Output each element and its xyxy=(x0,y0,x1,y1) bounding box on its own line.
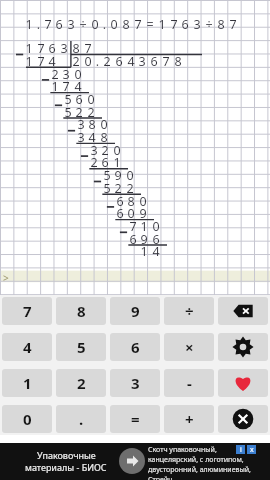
button[interactable]: 9 xyxy=(110,297,160,325)
staticText: 6 xyxy=(113,53,125,70)
button[interactable]: + xyxy=(164,405,214,433)
button[interactable]: Упаковочные xyxy=(0,443,270,480)
staticText: 4 xyxy=(23,337,32,357)
staticText: двусторонний, алюминиевый, xyxy=(148,465,251,475)
staticText: 0 xyxy=(23,409,32,429)
staticText: 7 xyxy=(132,16,144,33)
staticText: 0 xyxy=(111,142,123,159)
staticText: 1 xyxy=(23,16,35,33)
staticText: 3 xyxy=(60,66,72,83)
button[interactable]: 5 xyxy=(56,333,106,361)
button[interactable]: Clear xyxy=(218,405,268,433)
staticText: 4 xyxy=(72,78,84,95)
staticText: . xyxy=(101,16,108,33)
staticText: 9 xyxy=(138,231,150,248)
staticText: 3 xyxy=(191,16,203,33)
staticText: 6 xyxy=(53,16,65,33)
button[interactable]: Ad info xyxy=(236,445,245,454)
button[interactable]: 2 xyxy=(56,369,106,397)
button[interactable]: = xyxy=(110,405,160,433)
staticText: 0 xyxy=(125,205,137,222)
staticText: 6 xyxy=(114,193,126,210)
button[interactable]: 7 xyxy=(2,297,52,325)
staticText: 0 xyxy=(124,167,136,184)
staticText: 0 xyxy=(137,193,149,210)
staticText: 5 xyxy=(101,180,113,197)
button[interactable]: 3 xyxy=(110,369,160,397)
staticText: 4 xyxy=(46,53,58,70)
staticText: 0 xyxy=(85,91,97,108)
staticText: 8 xyxy=(70,40,82,57)
staticText: 5 xyxy=(77,337,86,357)
staticText: 8 xyxy=(125,193,137,210)
staticText: 7 xyxy=(82,40,94,57)
staticText: = xyxy=(131,409,140,429)
button[interactable]: Settings xyxy=(218,333,268,361)
staticText: 7 xyxy=(127,218,139,235)
staticText: 2 xyxy=(124,180,136,197)
button[interactable]: - xyxy=(164,369,214,397)
staticText: - xyxy=(187,373,192,393)
button[interactable]: ÷ xyxy=(164,297,214,325)
button[interactable]: Close ad xyxy=(247,445,256,454)
staticText: 1 xyxy=(156,16,168,33)
staticText: 6 xyxy=(99,154,111,171)
staticText: . xyxy=(94,53,101,70)
staticText: 3 xyxy=(75,116,87,133)
staticText: 1 xyxy=(111,154,123,171)
staticText: . xyxy=(79,409,84,429)
staticText: 9 xyxy=(131,301,140,321)
button[interactable]: Favorite xyxy=(218,369,268,397)
staticText: > xyxy=(3,271,9,283)
staticText: 2 xyxy=(99,142,111,159)
staticText: 0 xyxy=(150,218,162,235)
staticText: x xyxy=(250,445,254,454)
staticText: . xyxy=(35,16,42,33)
staticText: 8 xyxy=(86,116,98,133)
staticText: 5 xyxy=(62,104,74,121)
staticText: 6 xyxy=(73,91,85,108)
button[interactable]: 1 xyxy=(2,369,52,397)
button[interactable]: 6 xyxy=(110,333,160,361)
staticText: материалы - БИОС xyxy=(25,461,107,473)
button[interactable]: 4 xyxy=(2,333,52,361)
button[interactable]: 0 xyxy=(2,405,52,433)
button[interactable]: × xyxy=(164,333,214,361)
staticText: 6 xyxy=(127,231,139,248)
button[interactable]: > xyxy=(0,271,270,283)
staticText: 7 xyxy=(227,16,239,33)
staticText: 7 xyxy=(168,16,180,33)
staticText: 4 xyxy=(86,129,98,146)
button[interactable]: 8 xyxy=(56,297,106,325)
staticText: 1 xyxy=(138,218,150,235)
staticText: 7 xyxy=(35,53,47,70)
staticText: ÷ xyxy=(77,16,89,33)
staticText: 0 xyxy=(72,66,84,83)
staticText: 2 xyxy=(88,154,100,171)
staticText: Скотч упаковочный, xyxy=(148,445,217,455)
staticText: 7 xyxy=(60,78,72,95)
staticText: 2 xyxy=(101,53,113,70)
button[interactable]: . xyxy=(56,405,106,433)
staticText: = xyxy=(144,16,156,33)
staticText: 6 xyxy=(148,53,160,70)
other: Settings xyxy=(232,336,254,358)
staticText: 0 xyxy=(108,16,120,33)
staticText: 6 xyxy=(150,231,162,248)
staticText: 3 xyxy=(75,129,87,146)
staticText: 6 xyxy=(114,205,126,222)
staticText: × xyxy=(185,337,194,357)
other: Backspace xyxy=(232,300,254,322)
staticText: 3 xyxy=(65,16,77,33)
staticText: 1 xyxy=(23,373,32,393)
button[interactable]: Backspace xyxy=(218,297,268,325)
staticText: 2 xyxy=(70,53,82,70)
staticText: ÷ xyxy=(185,301,194,321)
staticText: ÷ xyxy=(203,16,215,33)
staticText: 5 xyxy=(62,91,74,108)
staticText: 8 xyxy=(215,16,227,33)
staticText: 1 xyxy=(49,78,61,95)
staticText: 8 xyxy=(77,301,86,321)
staticText: 8 xyxy=(98,129,110,146)
staticText: Стрейч xyxy=(148,475,173,480)
